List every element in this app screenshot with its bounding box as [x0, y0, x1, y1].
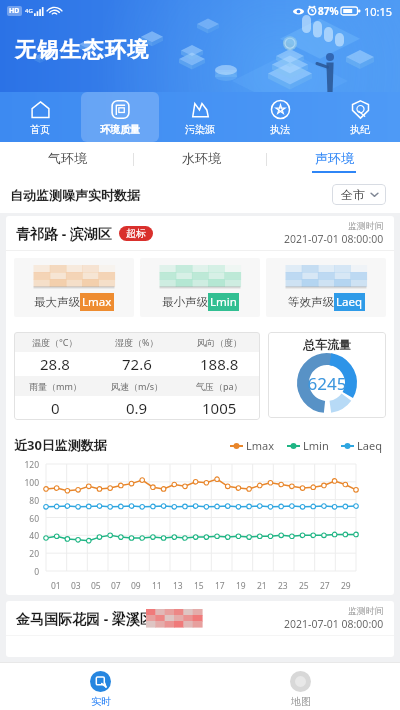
button[interactable]: 实时 — [0, 665, 200, 710]
staticText: Lmax — [246, 438, 275, 453]
staticText: 87% — [318, 4, 339, 18]
staticText: 27 — [320, 580, 330, 592]
staticText: 100 — [14, 477, 39, 489]
staticText: 气环境 — [48, 150, 87, 166]
staticText: 0.9 — [126, 398, 148, 418]
staticText: 声环境 — [315, 150, 354, 166]
staticText: 1005 — [202, 398, 237, 418]
staticText: 等效声级 — [288, 295, 334, 309]
staticText: Lmin — [210, 294, 237, 310]
staticText: 0 — [14, 566, 39, 578]
staticText: 0 — [51, 398, 60, 418]
other: 地图 — [290, 671, 311, 692]
staticText: 40 — [14, 530, 39, 542]
staticText: 6245 — [274, 372, 380, 395]
button[interactable]: 地图 — [200, 665, 400, 710]
staticText: 17 — [215, 580, 225, 592]
staticText: HD — [9, 6, 20, 16]
staticText: 自动监测噪声实时数据 — [10, 187, 140, 203]
staticText: Lmax — [82, 294, 112, 310]
button[interactable]: 气环境 — [0, 142, 134, 176]
staticText: 60 — [14, 513, 39, 525]
staticText: 20 — [14, 548, 39, 560]
staticText: 28.8 — [40, 354, 70, 374]
staticText: 09 — [131, 580, 141, 592]
button[interactable]: 全市 — [332, 184, 386, 205]
staticText: 实时 — [91, 695, 111, 708]
staticText: 青祁路 - 滨湖区 — [16, 224, 112, 243]
staticText: 最大声级 — [34, 295, 80, 309]
staticText: 执法 — [270, 123, 290, 136]
staticText: 05 — [91, 580, 101, 592]
staticText: 近30日监测数据 — [14, 436, 107, 454]
staticText: 10:15 — [364, 4, 393, 19]
staticText: Laeq — [357, 438, 382, 453]
button[interactable]: 水环境 — [134, 142, 267, 176]
staticText: 温度（°C） — [32, 336, 78, 348]
staticText: 23 — [278, 580, 288, 592]
staticText: 监测时间 — [348, 605, 384, 616]
staticText: 188.8 — [200, 354, 239, 374]
staticText: 金马国际花园 - 梁溪区 — [16, 609, 154, 628]
staticText: 25 — [299, 580, 309, 592]
staticText: 执纪 — [350, 123, 370, 136]
staticText: 72.6 — [122, 354, 152, 374]
staticText: 29 — [341, 580, 351, 592]
button[interactable]: 青祁路 - 滨湖区 — [6, 216, 394, 595]
staticText: 15 — [194, 580, 204, 592]
staticText: Lmin — [303, 438, 329, 453]
staticText: 雨量（mm） — [29, 380, 82, 392]
staticText: 11 — [152, 580, 162, 592]
staticText: 超标 — [126, 227, 146, 240]
staticText: 地图 — [291, 695, 311, 708]
staticText: 03 — [71, 580, 81, 592]
button[interactable]: 污染源 — [161, 92, 239, 142]
staticText: 环境质量 — [100, 123, 140, 136]
button[interactable]: 金马国际花园 - 梁溪区 — [6, 601, 394, 657]
button[interactable]: 声环境 — [267, 142, 400, 176]
staticText: 风速（m/s） — [111, 380, 164, 392]
staticText: 无锡生态环境 — [14, 37, 149, 63]
staticText: 2021-07-01 08:00:00 — [284, 232, 384, 246]
other: 实时 — [90, 671, 111, 692]
staticText: 气压（pa） — [196, 380, 243, 392]
staticText: 2021-07-01 08:00:00 — [284, 617, 384, 631]
button[interactable]: 首页 — [1, 92, 79, 142]
staticText: 最小声级 — [162, 295, 208, 309]
button[interactable]: 执法 — [241, 92, 319, 142]
staticText: 01 — [51, 580, 61, 592]
staticText: Laeq — [336, 294, 363, 310]
staticText: 风向（度） — [197, 337, 242, 348]
staticText: 120 — [14, 459, 39, 471]
staticText: 全市 — [341, 187, 365, 202]
staticText: 总车流量 — [303, 337, 351, 352]
button[interactable]: 环境质量 — [81, 92, 159, 142]
staticText: 21 — [257, 580, 267, 592]
staticText: 水环境 — [182, 150, 221, 166]
staticText: 污染源 — [185, 123, 215, 136]
staticText: 07 — [111, 580, 121, 592]
staticText: 首页 — [30, 123, 50, 136]
staticText: 监测时间 — [348, 220, 384, 231]
staticText: 80 — [14, 495, 39, 507]
staticText: 4G — [25, 7, 33, 15]
staticText: 19 — [236, 580, 246, 592]
staticText: 湿度（%） — [115, 336, 159, 348]
button[interactable]: 执纪 — [321, 92, 399, 142]
staticText: 13 — [173, 580, 183, 592]
